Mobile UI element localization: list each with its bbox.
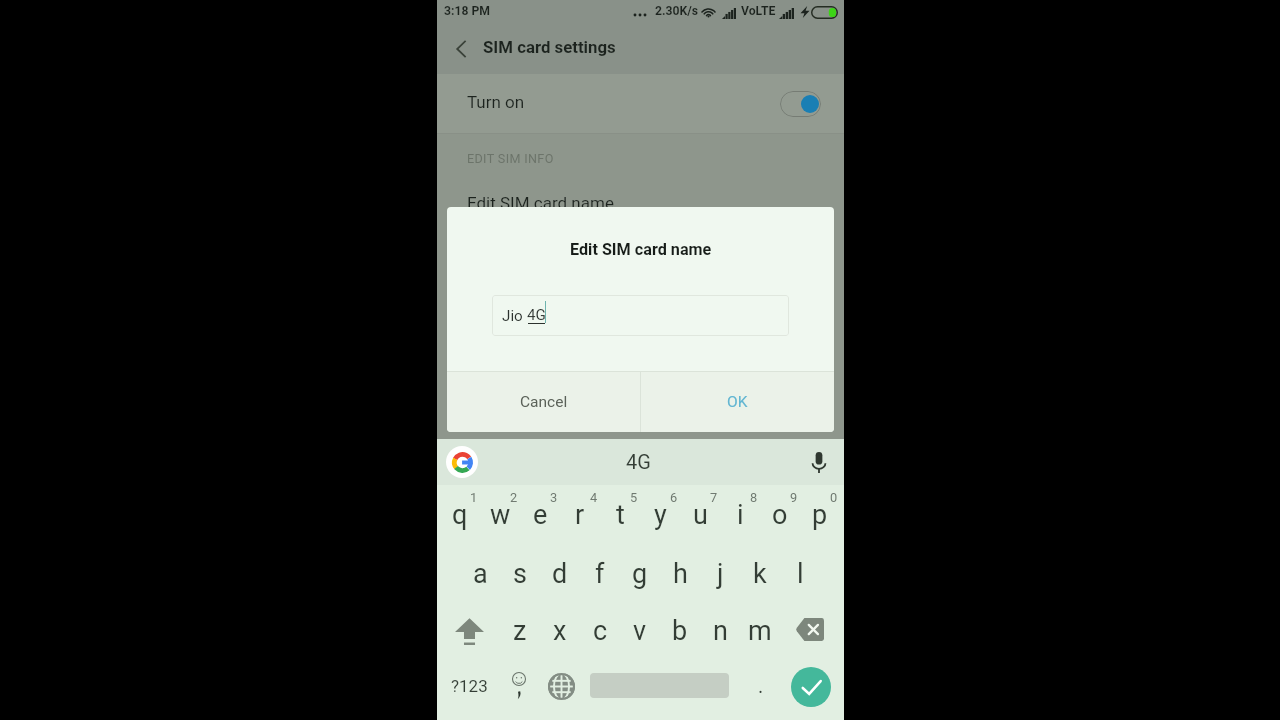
button[interactable]: n [700, 606, 740, 663]
staticText: o [772, 499, 788, 531]
staticText: 5 [630, 490, 638, 505]
button[interactable]: . [741, 663, 781, 720]
staticText: 2 [510, 490, 518, 505]
button[interactable]: v [620, 606, 660, 663]
button[interactable]: 8 [720, 485, 760, 549]
staticText: VoLTE [741, 4, 776, 18]
button[interactable]: 0 [800, 485, 840, 549]
button[interactable]: 2 [480, 485, 520, 549]
button[interactable]: Enter [783, 663, 839, 720]
button[interactable]: z [500, 606, 540, 663]
button[interactable]: Emoji [498, 663, 540, 720]
staticText: a [473, 558, 488, 590]
button[interactable]: a [460, 549, 500, 606]
staticText: k [753, 558, 767, 590]
button[interactable]: Back [437, 27, 481, 71]
button[interactable]: j [700, 549, 740, 606]
button[interactable]: m [740, 606, 780, 663]
staticText: b [672, 615, 688, 647]
button[interactable]: Backspace [780, 606, 840, 663]
staticText: n [713, 615, 728, 647]
button[interactable]: h [660, 549, 700, 606]
staticText: u [693, 499, 708, 531]
button[interactable]: s [500, 549, 540, 606]
button[interactable]: Change language [539, 663, 581, 720]
staticText: . [758, 674, 764, 697]
button[interactable]: Shift [439, 606, 500, 663]
button[interactable]: x [540, 606, 580, 663]
button[interactable]: l [780, 549, 820, 606]
staticText: t [616, 499, 625, 531]
button[interactable]: Turn on [437, 74, 844, 133]
staticText: Turn on [467, 92, 525, 112]
staticText: c [593, 615, 608, 647]
staticText: l [797, 558, 804, 590]
staticText: i [737, 499, 744, 531]
button[interactable]: 7 [680, 485, 720, 549]
staticText: e [533, 499, 548, 531]
staticText: Edit SIM card name [467, 193, 614, 213]
staticText: s [513, 558, 527, 590]
button[interactable]: 9 [760, 485, 800, 549]
staticText: 3 [550, 490, 558, 505]
staticText: 4 [590, 490, 598, 505]
staticText: Edit SIM card name [570, 240, 712, 259]
staticText: 1 [470, 490, 478, 505]
staticText: q [452, 499, 468, 531]
button[interactable]: Jio [492, 295, 789, 336]
staticText: 3:18 PM [444, 4, 490, 18]
staticText: ?123 [451, 676, 488, 696]
staticText: z [513, 615, 527, 647]
button[interactable]: Voice input [805, 448, 833, 476]
button[interactable]: f [580, 549, 620, 606]
staticText: Jio [502, 307, 527, 325]
staticText: m [748, 615, 772, 647]
button[interactable]: ?123 [446, 663, 492, 720]
staticText: f [595, 558, 605, 590]
button[interactable]: Google [446, 446, 478, 478]
staticText: j [717, 558, 724, 590]
staticText: y [654, 499, 667, 531]
staticText: g [632, 558, 648, 590]
staticText: OK [727, 393, 748, 411]
staticText: d [552, 558, 568, 590]
button[interactable]: b [660, 606, 700, 663]
button[interactable]: 1 [439, 485, 480, 549]
staticText: 0 [830, 490, 838, 505]
button[interactable]: Cancel [447, 372, 640, 432]
button[interactable]: k [740, 549, 780, 606]
staticText: v [633, 615, 647, 647]
button[interactable]: g [620, 549, 660, 606]
staticText: EDIT SIM INFO [467, 151, 554, 166]
button[interactable] [585, 663, 733, 720]
button[interactable]: 6 [640, 485, 680, 549]
button[interactable]: d [540, 549, 580, 606]
staticText: h [673, 558, 688, 590]
button[interactable]: 5 [600, 485, 640, 549]
staticText: Cancel [520, 393, 568, 411]
staticText: 4G [527, 306, 546, 324]
staticText: r [575, 499, 585, 531]
button[interactable]: 3 [520, 485, 560, 549]
staticText: w [490, 499, 511, 531]
staticText: x [553, 615, 567, 647]
staticText: 8 [750, 490, 758, 505]
staticText: SIM card settings [483, 37, 616, 57]
button[interactable]: 4 [560, 485, 600, 549]
staticText: 2.30K/s [655, 4, 699, 18]
staticText: 4G [626, 450, 651, 473]
staticText: 9 [790, 490, 798, 505]
button[interactable]: OK [641, 372, 834, 432]
staticText: 6 [670, 490, 678, 505]
staticText: p [812, 499, 828, 531]
button[interactable]: c [580, 606, 620, 663]
staticText: 7 [710, 490, 718, 505]
